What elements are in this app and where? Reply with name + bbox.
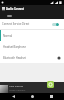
button[interactable]: Back bbox=[7, 93, 19, 100]
button[interactable]: Category tab bbox=[7, 15, 12, 17]
button[interactable]: Normal bbox=[0, 30, 64, 41]
staticText: Headset/Earphone bbox=[3, 45, 64, 49]
staticText: Now Playing bbox=[9, 84, 23, 87]
button[interactable]: Connect Service Direct bbox=[0, 19, 64, 29]
button[interactable]: Recent apps bbox=[45, 93, 57, 100]
button[interactable]: Bluetooth Headset bbox=[0, 52, 64, 63]
staticText: Normal bbox=[3, 34, 64, 38]
button[interactable]: Navigate up bbox=[0, 5, 6, 12]
staticText: Audio Connect bbox=[9, 88, 26, 91]
button[interactable]: Open app bbox=[47, 81, 54, 88]
button[interactable]: Headset/Earphone bbox=[0, 41, 64, 52]
staticText: Audio Connect bbox=[6, 7, 25, 10]
staticText: Bluetooth Headset bbox=[3, 56, 56, 60]
button[interactable]: Now Playing bbox=[0, 82, 64, 93]
staticText: Connect Service Direct bbox=[2, 22, 52, 26]
button[interactable]: Home bbox=[26, 93, 38, 100]
button[interactable]: Settings bbox=[56, 55, 61, 60]
